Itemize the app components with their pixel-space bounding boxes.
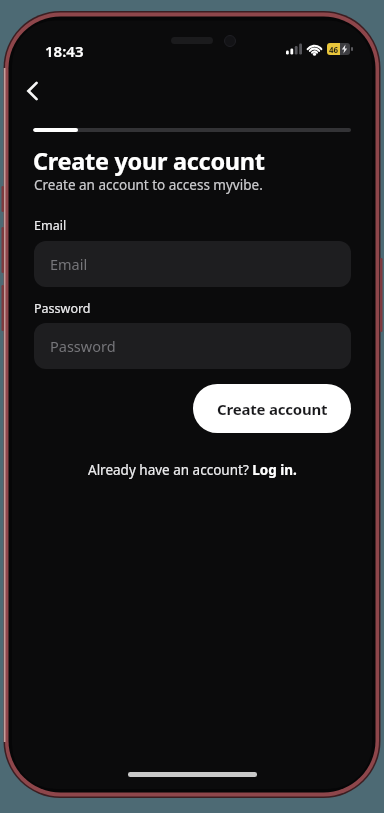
button[interactable]: Already have an account? Log in.	[0, 461, 384, 479]
staticText: Password	[34, 300, 91, 317]
staticText: Password	[50, 336, 116, 356]
staticText: Create account	[217, 399, 328, 419]
staticText: Email	[50, 254, 88, 274]
staticText: Create an account to access myvibe.	[34, 176, 263, 194]
button[interactable]: Password	[34, 323, 351, 369]
button[interactable]: Email	[34, 241, 351, 287]
staticText: 46	[329, 44, 339, 55]
staticText: Already have an account? Log in.	[88, 461, 297, 479]
button[interactable]: Create account	[193, 384, 351, 433]
button[interactable]	[16, 74, 48, 107]
staticText: 18:43	[45, 41, 84, 61]
staticText: Email	[34, 217, 67, 234]
staticText: Create your account	[33, 145, 265, 177]
